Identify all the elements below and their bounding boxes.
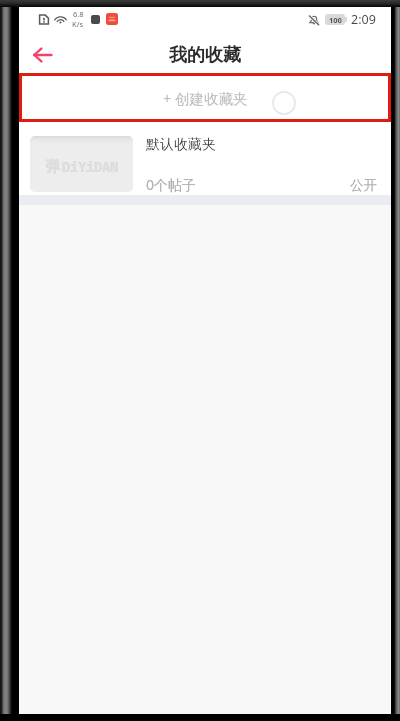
staticText: K/s [72, 19, 84, 29]
staticText: + 创建收藏夹 [163, 88, 248, 108]
button[interactable]: + 创建收藏夹 [19, 73, 391, 122]
staticText: 2:09 [351, 11, 376, 28]
staticText: 6.8 [73, 9, 84, 19]
staticText: 0个帖子 [146, 175, 197, 194]
staticText: 我的收藏 [169, 44, 241, 67]
button[interactable]: 弹 [19, 122, 391, 195]
staticText: 公开 [350, 177, 377, 194]
staticText: 弹 [46, 158, 60, 176]
staticText: DiYiDAN [62, 157, 118, 176]
button[interactable]: Back [25, 38, 59, 72]
staticText: 默认收藏夹 [146, 136, 216, 154]
staticText: 100 [329, 15, 342, 25]
